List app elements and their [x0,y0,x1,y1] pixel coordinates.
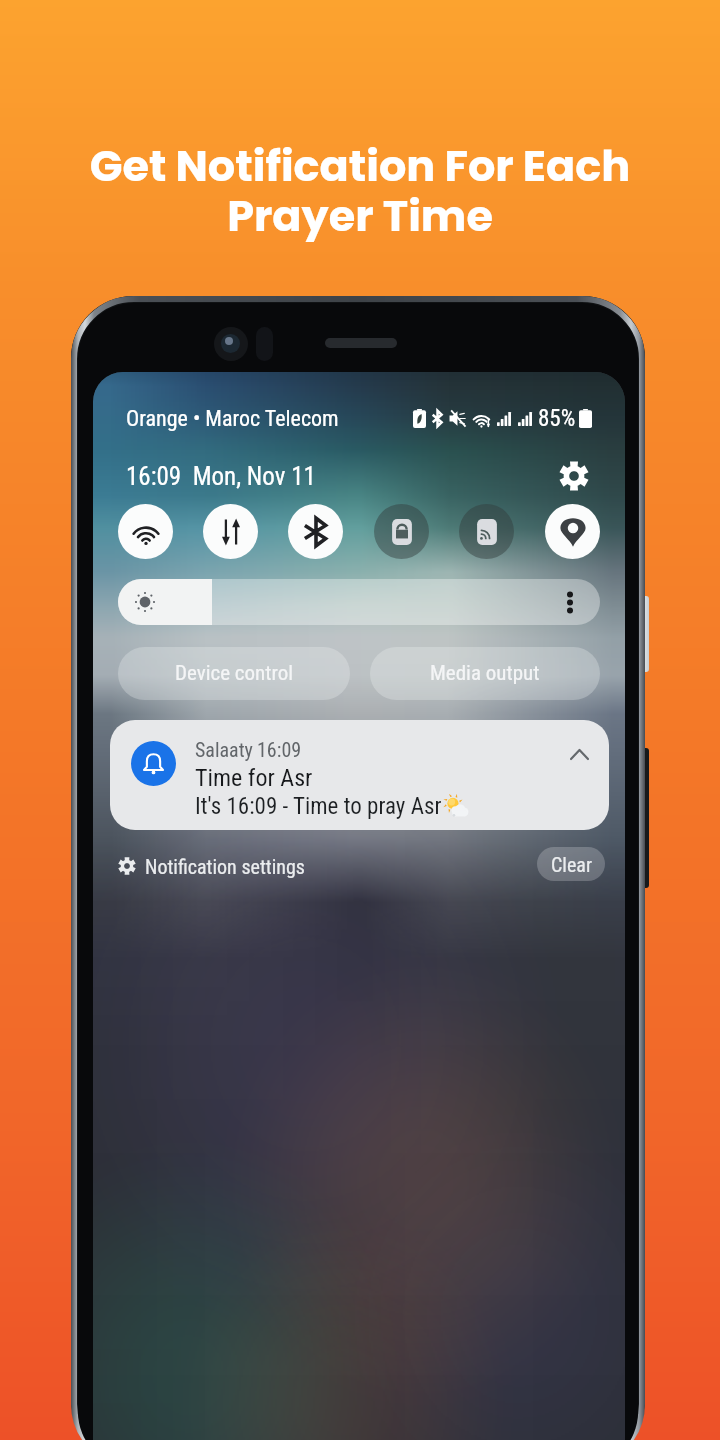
staticText: Device control [175,661,294,686]
staticText: Media output [430,661,540,686]
staticText: It's 16:09 - Time to pray Asr [195,793,442,820]
button[interactable]: Salaaty [110,720,609,830]
staticText: Salaaty [195,738,253,761]
staticText: Orange • Maroc Telecom [126,406,339,432]
button[interactable]: Brightness [118,579,600,625]
button[interactable]: Wi-Fi [118,504,173,559]
other: More brightness options [567,592,573,613]
staticText: 16:09 [257,738,302,761]
button[interactable]: Screen lock [374,504,429,559]
button[interactable]: Media output [370,647,600,700]
button[interactable]: Screen cast [459,504,514,559]
staticText: Clear [551,853,592,876]
button[interactable]: Location [545,504,600,559]
button[interactable]: Settings [556,458,592,494]
staticText: 16:09 Mon, Nov 11 [126,462,316,491]
button[interactable]: Bluetooth [288,504,343,559]
button[interactable]: Notification settings [118,848,305,884]
staticText: Time for Asr [195,764,313,792]
button[interactable]: Device control [118,647,350,700]
staticText: Get Notification For Each Prayer Time [0,136,720,246]
button[interactable]: Clear [537,847,605,881]
staticText: 85% [538,405,576,432]
staticText: Notification settings [145,855,305,878]
button[interactable]: Mobile data [203,504,258,559]
button[interactable]: Collapse notification [562,737,596,771]
